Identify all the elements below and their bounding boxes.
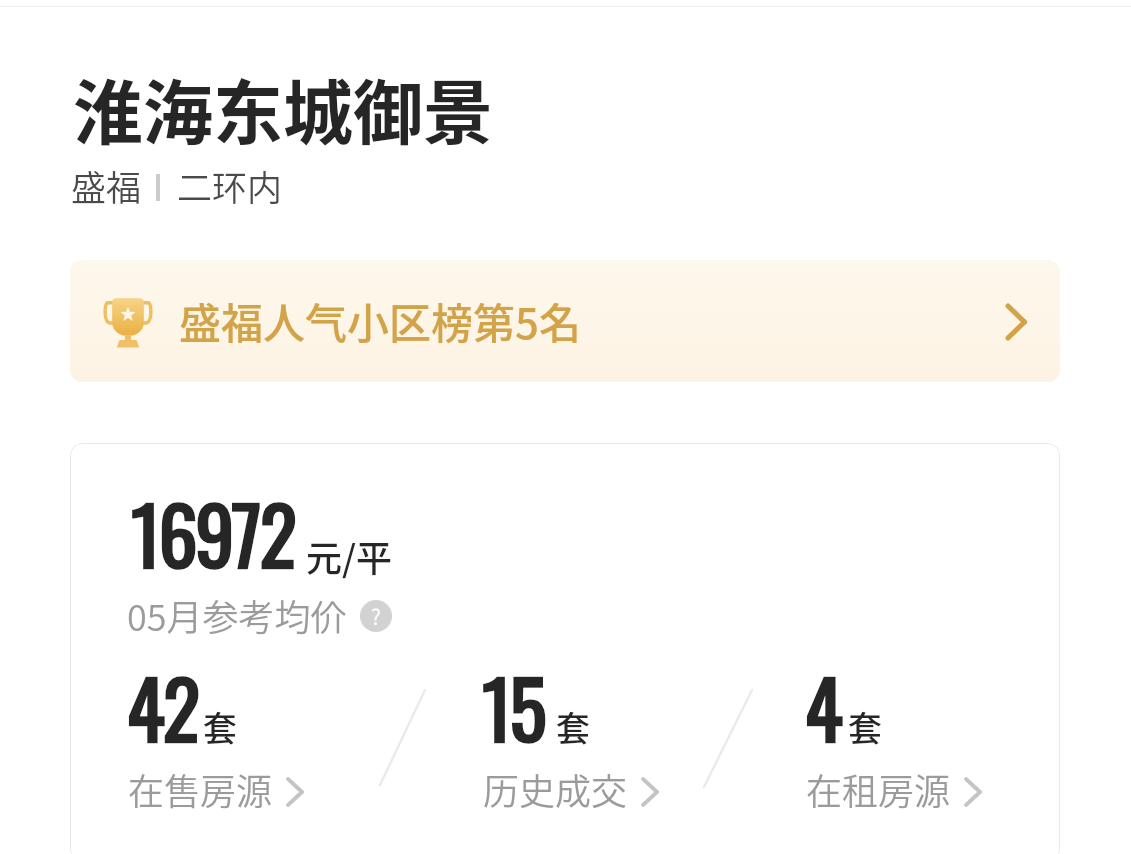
staticText: 二环内 bbox=[177, 160, 283, 211]
button[interactable]: 42 bbox=[108, 638, 408, 798]
staticText: 盛福 bbox=[71, 160, 142, 211]
staticText: ? bbox=[371, 601, 381, 631]
staticText: 15 bbox=[482, 649, 545, 765]
staticText: 套 bbox=[848, 702, 882, 751]
button[interactable]: 4 bbox=[786, 638, 1060, 798]
staticText: 套 bbox=[556, 702, 590, 751]
button[interactable]: 15 bbox=[463, 638, 763, 798]
staticText: 盛福人气小区榜第5名 bbox=[179, 290, 581, 351]
staticText: 16972 bbox=[131, 475, 295, 591]
button[interactable]: 16972 bbox=[110, 473, 530, 643]
staticText: 05月参考均价 bbox=[127, 589, 347, 641]
staticText: 套 bbox=[203, 702, 237, 751]
staticText: 在租房源 bbox=[806, 763, 951, 815]
staticText: 淮海东城御景 bbox=[73, 58, 493, 159]
staticText: 在售房源 bbox=[128, 763, 273, 815]
button[interactable]: 查看小区榜单 bbox=[990, 296, 1042, 348]
button[interactable]: 均价说明 bbox=[360, 600, 392, 632]
staticText: 历史成交 bbox=[483, 763, 628, 815]
staticText: 元/平 bbox=[306, 530, 393, 582]
staticText: 42 bbox=[127, 649, 198, 765]
button[interactable]: 盛福人气小区榜第5名 bbox=[70, 260, 1060, 382]
staticText: 4 bbox=[805, 649, 841, 765]
